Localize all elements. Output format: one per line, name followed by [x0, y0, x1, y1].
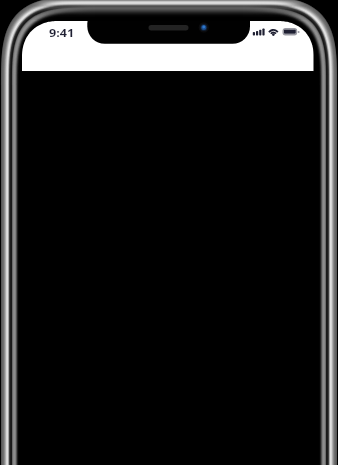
staticText: 9:41: [49, 26, 75, 40]
